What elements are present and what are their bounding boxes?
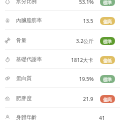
- staticText: 3.2公斤: [76, 37, 94, 44]
- staticText: 標準: [103, 0, 112, 5]
- button[interactable]: 骨量: [0, 31, 120, 50]
- staticText: 蛋白質: [16, 75, 32, 82]
- button[interactable]: 水分比例: [0, 0, 120, 11]
- button[interactable]: 基礎代謝率: [0, 50, 120, 69]
- staticText: 53.1%: [79, 0, 94, 5]
- staticText: 水分比例: [16, 0, 37, 5]
- staticText: 13.5: [83, 17, 94, 24]
- staticText: 骨量: [16, 37, 27, 44]
- staticText: 標準: [103, 77, 112, 82]
- staticText: 19.5%: [79, 75, 94, 82]
- button[interactable]: 肥胖度: [0, 89, 120, 108]
- staticText: 標準: [103, 39, 112, 44]
- button[interactable]: 身體年齡: [0, 108, 120, 120]
- button[interactable]: 蛋白質: [0, 69, 120, 88]
- staticText: 41: [99, 114, 105, 120]
- staticText: 肥胖度: [16, 95, 32, 102]
- button[interactable]: 內臟脂肪率: [0, 11, 120, 30]
- staticText: 偏高: [103, 19, 112, 24]
- staticText: 21.9: [83, 95, 94, 102]
- staticText: 內臟脂肪率: [16, 17, 42, 24]
- staticText: 身體年齡: [16, 114, 37, 120]
- staticText: 偏低: [103, 58, 112, 63]
- staticText: 偏高: [103, 97, 112, 102]
- staticText: 1812大卡: [71, 56, 94, 63]
- staticText: 基礎代謝率: [16, 56, 42, 63]
